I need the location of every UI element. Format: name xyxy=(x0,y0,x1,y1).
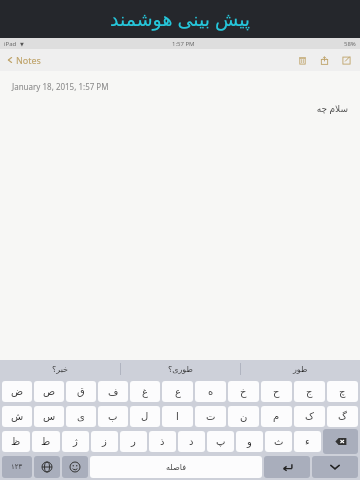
staticText: ل xyxy=(141,411,149,423)
staticText: ▼ xyxy=(20,41,24,47)
button[interactable]: ن xyxy=(228,406,259,427)
button[interactable]: ص xyxy=(34,381,64,402)
staticText: ج xyxy=(306,386,313,398)
button[interactable]: Change keyboard xyxy=(34,456,60,478)
staticText: January 18, 2015, 1:57 PM xyxy=(12,81,109,92)
button[interactable]: پ xyxy=(207,431,234,452)
button[interactable]: ط xyxy=(32,431,60,452)
button[interactable]: خبر؟ xyxy=(0,360,120,378)
staticText: Notes xyxy=(16,54,41,66)
staticText: و xyxy=(247,436,252,448)
button[interactable]: ذ xyxy=(149,431,176,452)
button[interactable]: Compose xyxy=(338,52,354,68)
button[interactable]: ض xyxy=(2,381,32,402)
staticText: ژ xyxy=(73,436,78,448)
button[interactable]: ک xyxy=(294,406,325,427)
button[interactable]: ت xyxy=(195,406,226,427)
button[interactable]: Return xyxy=(264,456,310,478)
button[interactable]: خ xyxy=(228,381,259,402)
staticText: پ xyxy=(216,436,226,448)
staticText: س xyxy=(43,411,56,423)
staticText: م xyxy=(273,411,280,423)
button[interactable]: و xyxy=(236,431,263,452)
button[interactable]: Hide keyboard xyxy=(312,456,358,478)
staticText: ۱۲۳ xyxy=(11,463,23,471)
button[interactable]: ح xyxy=(261,381,292,402)
button[interactable]: طوری؟ xyxy=(121,360,240,378)
staticText: ص xyxy=(43,386,56,398)
button[interactable]: ه xyxy=(195,381,226,402)
button[interactable]: فاصله xyxy=(90,456,262,478)
staticText: ز xyxy=(102,436,107,448)
staticText: ف xyxy=(108,386,119,398)
staticText: خ xyxy=(240,386,247,398)
button[interactable]: د xyxy=(178,431,205,452)
staticText: ر xyxy=(131,436,136,448)
staticText: ع xyxy=(175,386,181,398)
staticText: 58% xyxy=(344,40,356,48)
staticText: ک xyxy=(305,411,314,423)
button[interactable]: Emoji xyxy=(62,456,88,478)
button[interactable]: Share xyxy=(316,52,332,68)
button[interactable]: ب xyxy=(98,406,128,427)
button[interactable]: ق xyxy=(66,381,96,402)
staticText: خبر؟ xyxy=(52,365,69,374)
staticText: ح xyxy=(273,386,280,398)
staticText: چ xyxy=(339,386,346,398)
button[interactable]: ا xyxy=(162,406,193,427)
button[interactable]: ش xyxy=(2,406,32,427)
button[interactable]: ز xyxy=(91,431,118,452)
button[interactable]: ع xyxy=(162,381,193,402)
staticText: سلام چه xyxy=(0,102,348,114)
button[interactable]: غ xyxy=(130,381,160,402)
button[interactable]: س xyxy=(34,406,64,427)
button[interactable]: ث xyxy=(265,431,292,452)
button[interactable]: ۱۲۳ xyxy=(2,456,32,478)
button[interactable]: ج xyxy=(294,381,325,402)
button[interactable]: چ xyxy=(327,381,358,402)
staticText: ض xyxy=(11,386,24,398)
staticText: پیش بینی هوشمند xyxy=(110,6,251,32)
staticText: ش xyxy=(11,411,24,423)
button[interactable]: م xyxy=(261,406,292,427)
staticText: ب xyxy=(108,411,118,423)
staticText: ه xyxy=(208,386,214,398)
staticText: ق xyxy=(77,386,85,398)
staticText: ی xyxy=(77,411,85,423)
button[interactable]: ء xyxy=(294,431,321,452)
button[interactable]: طور xyxy=(241,360,360,378)
staticText: غ xyxy=(142,386,148,398)
button[interactable]: ژ xyxy=(62,431,89,452)
button[interactable]: ر xyxy=(120,431,147,452)
button[interactable]: ف xyxy=(98,381,128,402)
button[interactable]: ی xyxy=(66,406,96,427)
staticText: ء xyxy=(305,436,310,448)
button[interactable]: Backspace xyxy=(323,429,358,454)
staticText: 1:57 PM xyxy=(172,40,195,48)
staticText: iPad xyxy=(4,40,17,48)
staticText: د xyxy=(189,436,194,448)
staticText: ا xyxy=(176,411,179,423)
staticText: ث xyxy=(274,436,284,448)
staticText: ن xyxy=(240,411,248,423)
staticText: ط xyxy=(41,436,51,448)
button[interactable]: ل xyxy=(130,406,160,427)
button[interactable]: ظ xyxy=(2,431,30,452)
staticText: ذ xyxy=(160,436,165,448)
staticText: فاصله xyxy=(166,463,186,472)
button[interactable]: Delete xyxy=(294,52,310,68)
staticText: طور xyxy=(293,365,308,374)
staticText: گ xyxy=(338,411,347,423)
button[interactable]: Notes xyxy=(6,54,41,66)
staticText: ظ xyxy=(11,436,21,448)
staticText: طوری؟ xyxy=(168,365,193,374)
staticText: ت xyxy=(206,411,216,423)
button[interactable]: گ xyxy=(327,406,358,427)
